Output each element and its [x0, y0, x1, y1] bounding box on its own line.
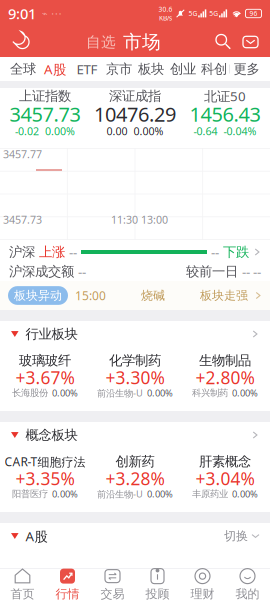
- staticText: 30.6: [158, 5, 172, 13]
- button[interactable]: 行业板块: [0, 321, 270, 347]
- staticText: +3.30%: [105, 366, 164, 389]
- staticText: ⌁: [42, 8, 48, 19]
- button[interactable]: 理财: [180, 569, 225, 600]
- staticText: 科创: [201, 61, 227, 77]
- staticText: 科兴制药: [192, 387, 228, 399]
- staticText: -0.64: [193, 124, 217, 138]
- staticText: --: [69, 243, 77, 261]
- staticText: 前沿生物-U: [97, 387, 143, 399]
- staticText: 0.00%: [232, 488, 258, 500]
- button[interactable]: 投顾: [135, 569, 180, 600]
- staticText: 化学制药: [109, 352, 161, 369]
- staticText: 首页: [10, 587, 34, 600]
- button[interactable]: 消息: [237, 28, 264, 56]
- button[interactable]: 搜索: [210, 28, 237, 56]
- button[interactable]: 夜间模式: [6, 28, 38, 56]
- staticText: 板块走强: [200, 288, 248, 303]
- staticText: ETF: [77, 60, 98, 78]
- staticText: 阳普医疗: [12, 488, 48, 500]
- button[interactable]: 板块异动: [0, 281, 270, 310]
- staticText: 长海股份: [12, 387, 48, 399]
- staticText: +2.80%: [195, 366, 254, 389]
- button[interactable]: 肝素概念: [180, 448, 270, 512]
- staticText: 较前一日: [186, 263, 238, 280]
- staticText: 11:30 13:00: [111, 212, 168, 227]
- staticText: KB/s: [159, 13, 172, 22]
- staticText: 行情: [55, 587, 79, 600]
- button[interactable]: 京市: [103, 57, 135, 81]
- staticText: 3457.77: [3, 147, 42, 161]
- staticText: 全球: [10, 61, 36, 77]
- button[interactable]: 生物制品: [180, 347, 270, 411]
- button[interactable]: 首页: [0, 569, 45, 600]
- staticText: 0.00%: [52, 488, 78, 500]
- staticText: 烧碱: [141, 288, 165, 303]
- button[interactable]: 行情: [45, 569, 90, 600]
- button[interactable]: 上证指数: [0, 88, 90, 142]
- staticText: 沪深成交额: [9, 263, 74, 280]
- button[interactable]: CAR-T细胞疗法: [0, 448, 90, 512]
- staticText: -- --: [242, 263, 261, 280]
- staticText: 0.00%: [147, 387, 173, 399]
- staticText: +3.04%: [195, 467, 254, 490]
- button[interactable]: 板块: [135, 57, 167, 81]
- button[interactable]: 玻璃玻纤: [0, 347, 90, 411]
- staticText: 0.00: [106, 124, 127, 138]
- staticText: 3457.73: [3, 212, 42, 227]
- staticText: 创业: [170, 61, 196, 77]
- staticText: 5G: [209, 9, 218, 18]
- staticText: A股: [26, 527, 48, 545]
- staticText: 0.00%: [45, 124, 75, 138]
- button[interactable]: 创新药: [90, 448, 180, 512]
- staticText: +3.67%: [15, 366, 74, 389]
- button[interactable]: 交易: [90, 569, 135, 600]
- staticText: 交易: [100, 587, 124, 600]
- staticText: 北证50: [204, 87, 246, 105]
- button[interactable]: 我的: [225, 569, 270, 600]
- button[interactable]: A股: [0, 523, 270, 549]
- staticText: 0.00%: [52, 387, 78, 399]
- staticText: +3.28%: [105, 467, 164, 490]
- staticText: 玻璃玻纤: [19, 352, 71, 369]
- staticText: 0.00%: [133, 124, 163, 138]
- staticText: +3.35%: [15, 467, 74, 490]
- staticText: -0.02: [15, 124, 39, 138]
- button[interactable]: 自选: [86, 28, 116, 56]
- staticText: 市场: [123, 30, 161, 53]
- button[interactable]: 北证50: [180, 88, 270, 142]
- staticText: 15:00: [75, 287, 106, 303]
- staticText: 深证成指: [109, 88, 161, 104]
- staticText: 0.00%: [147, 488, 173, 500]
- staticText: 3457.73: [9, 101, 80, 127]
- staticText: 丰原药业: [192, 488, 228, 500]
- button[interactable]: 全球: [7, 57, 39, 81]
- button[interactable]: A股: [39, 57, 71, 81]
- button[interactable]: 更多: [230, 57, 263, 81]
- staticText: 行业板块: [26, 326, 78, 342]
- button[interactable]: 深证成指: [90, 88, 180, 142]
- staticText: 上涨: [39, 244, 65, 260]
- button[interactable]: 创业: [167, 57, 199, 81]
- staticText: 10476.29: [94, 101, 176, 127]
- button[interactable]: 概念板块: [0, 422, 270, 448]
- button[interactable]: 化学制药: [90, 347, 180, 411]
- staticText: --: [211, 243, 219, 261]
- button[interactable]: 沪深: [0, 242, 270, 262]
- button[interactable]: 市场: [122, 28, 162, 56]
- staticText: 板块: [138, 61, 164, 77]
- button[interactable]: 科创: [199, 57, 229, 81]
- staticText: 板块异动: [14, 288, 62, 303]
- staticText: CAR-T细胞疗法: [4, 453, 85, 469]
- staticText: 切换: [224, 529, 248, 543]
- staticText: 投顾: [145, 587, 169, 600]
- staticText: 创新药: [115, 453, 154, 470]
- staticText: -0.04%: [223, 124, 256, 138]
- staticText: 自选: [86, 33, 116, 51]
- staticText: 96: [249, 9, 257, 18]
- button[interactable]: ETF: [71, 57, 103, 81]
- staticText: 前沿生物-U: [97, 488, 143, 500]
- staticText: 5G: [188, 9, 197, 18]
- staticText: 肝素概念: [199, 453, 251, 470]
- staticText: 下跌: [223, 244, 249, 260]
- staticText: 京市: [106, 61, 132, 77]
